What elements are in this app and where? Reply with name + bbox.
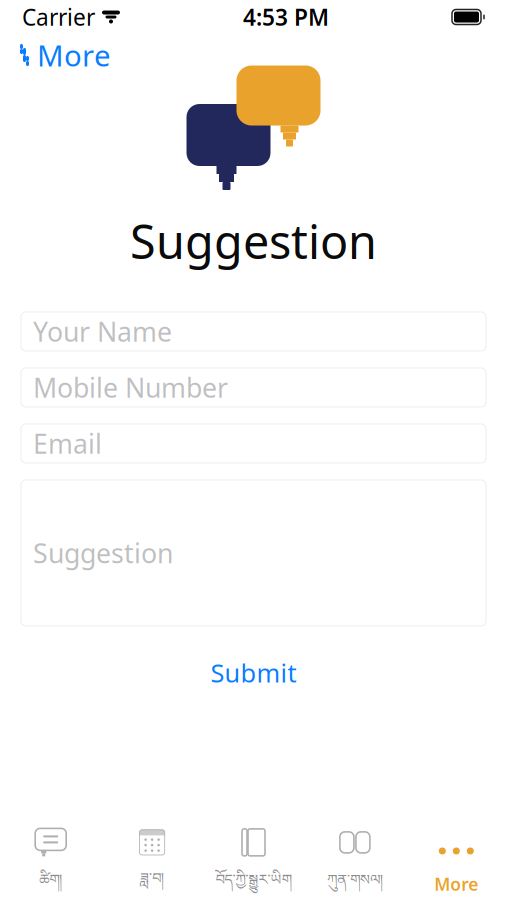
- staticText: More: [434, 872, 478, 895]
- staticText: Suggestion: [130, 210, 377, 272]
- button[interactable]: ཟླ་བ།: [101, 823, 203, 900]
- staticText: Carrier: [22, 2, 95, 32]
- button[interactable]: More: [15, 27, 115, 82]
- button[interactable]: More: [406, 830, 507, 900]
- staticText: བོད་ཀྱི་སྒྱུར་ཡིག: [215, 864, 291, 900]
- staticText: More: [37, 35, 111, 74]
- button[interactable]: ཚིག།: [0, 822, 101, 900]
- staticText: 4:53 PM: [243, 2, 329, 32]
- staticText: Email: [33, 426, 102, 461]
- staticText: Suggestion: [33, 535, 173, 571]
- staticText: Mobile Number: [33, 370, 228, 405]
- staticText: ཟླ་བ།: [140, 862, 164, 900]
- staticText: ཀུན་གསལ།: [327, 864, 383, 900]
- button[interactable]: Submit: [21, 645, 486, 701]
- button[interactable]: ཀུན་གསལ།: [304, 822, 406, 900]
- staticText: ཚིག།: [39, 864, 62, 900]
- staticText: Your Name: [33, 314, 172, 349]
- button[interactable]: བོད་ཀྱི་སྒྱུར་ཡིག: [203, 822, 304, 900]
- staticText: Submit: [210, 656, 296, 690]
